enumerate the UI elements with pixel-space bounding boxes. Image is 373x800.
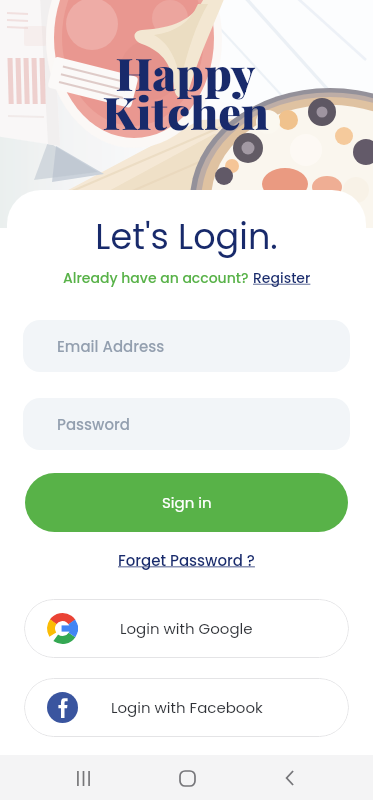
- staticText: Already have an account?: [63, 268, 253, 288]
- button[interactable]: Back: [270, 758, 310, 798]
- staticText: Sign in: [162, 492, 212, 513]
- staticText: Password: [57, 414, 130, 435]
- staticText: Login with Facebook: [111, 697, 263, 718]
- button[interactable]: Login with Facebook: [24, 678, 349, 737]
- button[interactable]: Login with Google: [24, 599, 349, 658]
- staticText: Let's Login.: [7, 212, 366, 261]
- button[interactable]: Sign in: [25, 473, 348, 532]
- button[interactable]: Recent apps: [63, 758, 103, 798]
- staticText: Forget Password ?: [118, 550, 255, 571]
- button[interactable]: Email Address: [23, 320, 350, 372]
- button[interactable]: Password: [23, 398, 350, 450]
- button[interactable]: Home: [167, 758, 207, 798]
- staticText: Email Address: [57, 336, 165, 357]
- staticText: Login with Google: [120, 618, 253, 639]
- button[interactable]: Register: [253, 268, 311, 288]
- staticText: Register: [253, 268, 311, 288]
- button[interactable]: Forget Password ?: [118, 550, 255, 571]
